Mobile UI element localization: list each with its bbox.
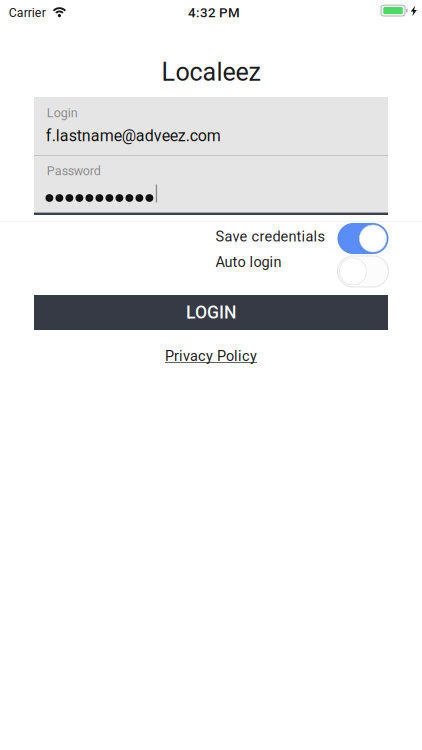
staticText: f.lastname@adveez.com (46, 126, 221, 145)
staticText: 4:32 PM (188, 5, 240, 21)
staticText: Auto login (215, 253, 281, 270)
button[interactable]: Privacy Policy (0, 346, 422, 366)
staticText: Password (47, 163, 101, 178)
staticText: Localeez (161, 57, 260, 87)
staticText: Save credentials (215, 228, 325, 245)
staticText: Carrier (9, 5, 46, 20)
staticText: Privacy Policy (165, 348, 257, 364)
staticText: LOGIN (186, 302, 236, 323)
button[interactable]: Auto login (215, 256, 388, 287)
button[interactable]: LOGIN (34, 295, 388, 330)
button[interactable]: Save credentials (215, 223, 388, 255)
staticText: Login (47, 105, 78, 120)
